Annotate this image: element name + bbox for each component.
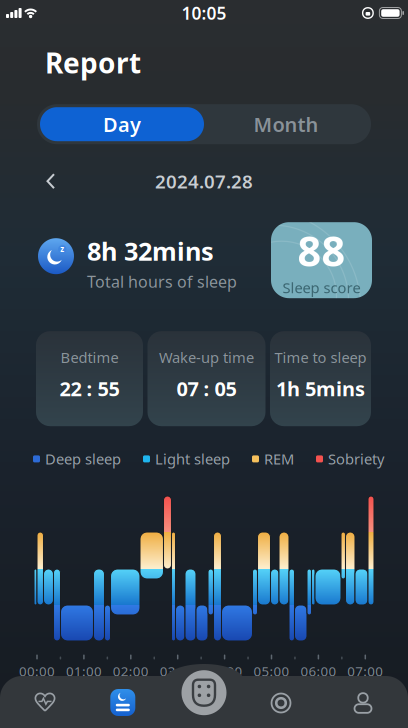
staticText: z [60, 244, 64, 254]
staticText: 03:00 [160, 662, 196, 680]
staticText: Report [45, 44, 141, 81]
button[interactable]: Month [204, 107, 368, 141]
staticText: Time to sleep [274, 348, 366, 367]
button[interactable]: Day [40, 107, 204, 141]
staticText: Light sleep [155, 449, 230, 469]
staticText: Day [103, 111, 141, 137]
staticText: 07 : 05 [176, 375, 236, 402]
staticText: Sleep score [282, 278, 360, 297]
staticText: 05:00 [253, 662, 289, 680]
staticText: 00:00 [19, 662, 55, 680]
staticText: 22 : 55 [59, 375, 119, 402]
button[interactable]: Discover [251, 681, 311, 725]
button[interactable]: Remote [181, 670, 226, 715]
staticText: 2024.07.28 [155, 169, 253, 194]
staticText: 1h 5mins [276, 375, 365, 402]
staticText: Bedtime [60, 348, 118, 367]
staticText: Deep sleep [45, 449, 121, 469]
staticText: 88 [297, 223, 345, 278]
staticText: 04:00 [207, 662, 243, 680]
staticText: 06:00 [300, 662, 336, 680]
staticText: Total hours of sleep [87, 271, 237, 292]
staticText: Month [253, 111, 318, 137]
staticText: 8h 32mins [87, 234, 214, 268]
staticText: REM [264, 449, 294, 469]
button[interactable]: Previous day [36, 168, 66, 194]
staticText: 01:00 [66, 662, 102, 680]
staticText: Wake-up time [159, 348, 254, 367]
button[interactable]: Health [15, 680, 75, 724]
staticText: 07:00 [347, 662, 383, 680]
button[interactable]: Sleep [93, 680, 153, 724]
button[interactable]: Profile [333, 681, 393, 725]
staticText: Sobriety [328, 449, 384, 469]
staticText: 02:00 [113, 662, 149, 680]
staticText: 10:05 [181, 1, 226, 24]
